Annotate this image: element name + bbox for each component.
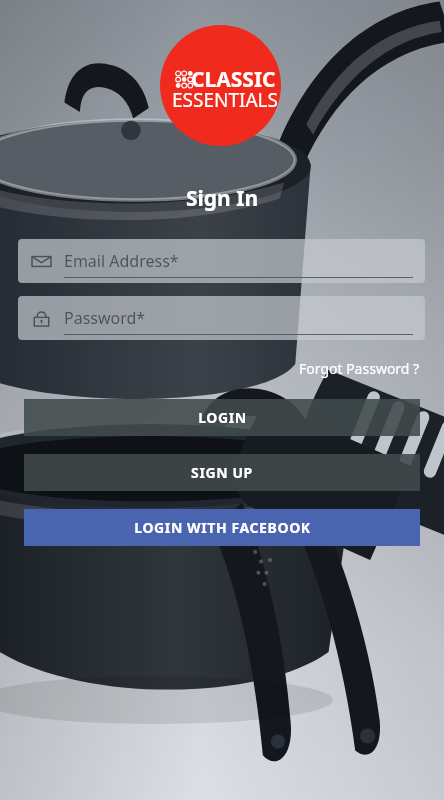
button[interactable]: SIGN UP [24, 454, 420, 491]
button[interactable]: Email Address* [18, 239, 425, 283]
button[interactable]: Password* [18, 296, 425, 340]
staticText: LOGIN WITH FACEBOOK [134, 518, 311, 537]
staticText: Sign In [186, 184, 259, 213]
staticText: Forgot Password ? [299, 359, 420, 378]
button[interactable]: LOGIN WITH FACEBOOK [24, 509, 420, 546]
staticText: SIGN UP [191, 463, 253, 482]
staticText: CLASSIC [191, 65, 276, 94]
button[interactable]: Classic Essentials logo [160, 25, 281, 146]
staticText: Password* [64, 307, 146, 329]
button[interactable]: LOGIN [24, 399, 420, 436]
button[interactable]: Forgot Password ? [295, 356, 424, 381]
staticText: LOGIN [198, 408, 247, 427]
staticText: Email Address* [64, 250, 179, 272]
staticText: ESSENTIALS [172, 87, 278, 113]
